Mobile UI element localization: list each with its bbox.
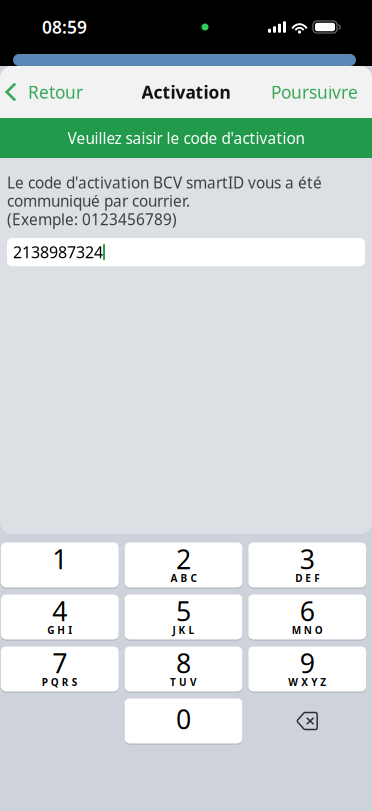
staticText: communiqué par courrier. (7, 190, 190, 211)
button[interactable]: Delete (248, 698, 366, 744)
staticText: 8 (176, 645, 191, 681)
staticText: 9 (300, 645, 315, 681)
staticText: 1 (52, 541, 67, 577)
button[interactable]: 1 (1, 542, 119, 588)
button[interactable]: 2 (125, 542, 242, 588)
staticText: T U V (170, 675, 197, 689)
staticText: J K L (172, 623, 194, 637)
staticText: Poursuivre (271, 80, 358, 104)
staticText: G H I (47, 623, 72, 637)
staticText: 3 (300, 541, 315, 577)
staticText: M N O (292, 623, 323, 637)
staticText: 4 (52, 593, 67, 629)
staticText: 08:59 (42, 15, 87, 38)
button[interactable]: 6 (248, 594, 366, 640)
button[interactable]: 9 (248, 646, 366, 692)
staticText: W X Y Z (288, 675, 326, 689)
button[interactable]: 3 (248, 542, 366, 588)
staticText: 7 (52, 645, 67, 681)
staticText: 0 (176, 701, 191, 737)
button[interactable]: 7 (1, 646, 119, 692)
staticText: D E F (295, 571, 319, 585)
staticText: A B C (170, 571, 196, 585)
staticText: 2138987324 (13, 241, 103, 263)
button[interactable]: Retour (0, 72, 93, 112)
staticText: (Exemple: 0123456789) (7, 209, 177, 230)
staticText: 5 (176, 593, 191, 629)
button[interactable]: Poursuivre (257, 72, 372, 112)
button[interactable]: 0 (125, 698, 242, 744)
staticText: Activation (141, 80, 230, 103)
staticText: P Q R S (42, 675, 78, 689)
button[interactable]: 4 (1, 594, 119, 640)
staticText: 2 (176, 541, 191, 577)
staticText: Veuillez saisir le code d'activation (67, 128, 304, 148)
button[interactable]: 8 (125, 646, 242, 692)
staticText: Le code d'activation BCV smartID vous a … (7, 172, 322, 193)
staticText: 6 (300, 593, 315, 629)
button[interactable]: 5 (125, 594, 242, 640)
staticText: Retour (28, 80, 83, 104)
